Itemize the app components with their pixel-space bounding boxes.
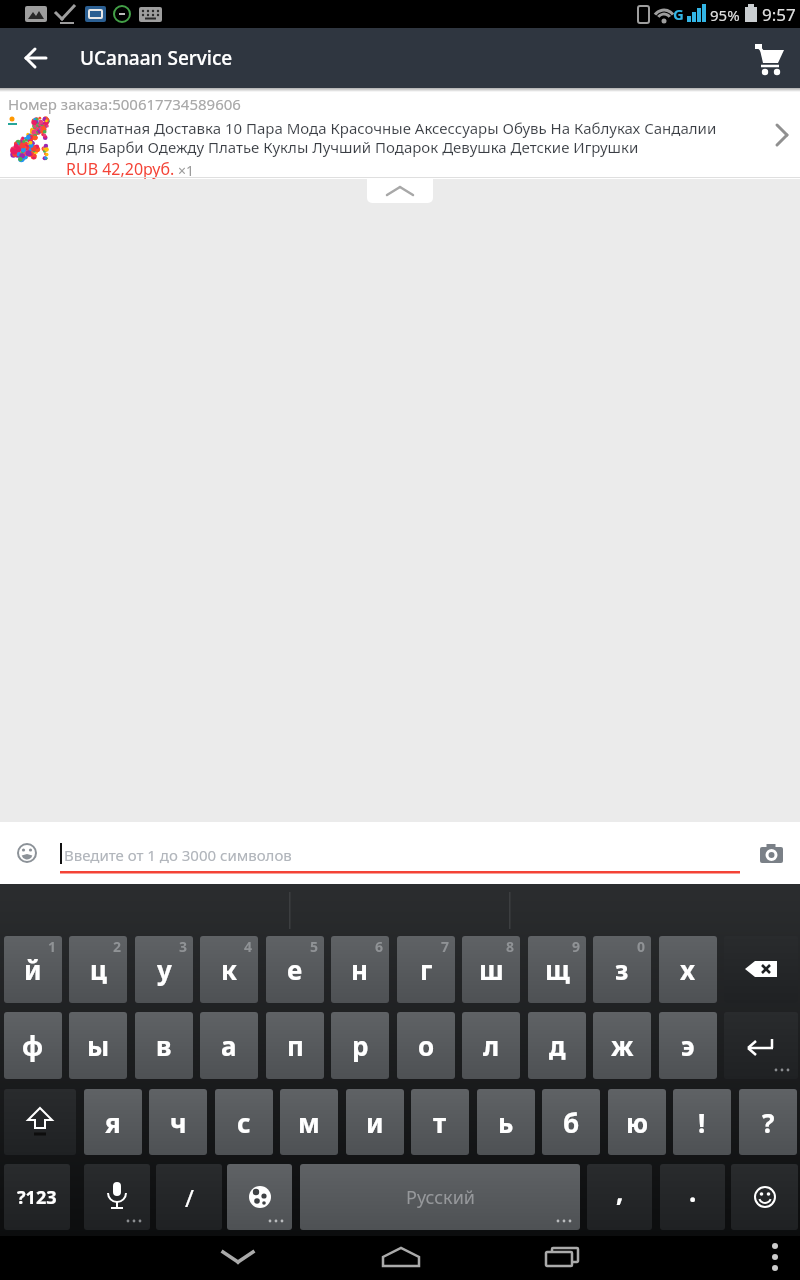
staticText: ц [90, 952, 107, 987]
staticText: л [483, 1028, 500, 1063]
button[interactable]: х [659, 936, 717, 1003]
button[interactable]: ж [593, 1012, 651, 1079]
staticText: 7 [441, 937, 450, 956]
button[interactable]: , [587, 1164, 652, 1230]
staticText: 0 [637, 937, 646, 956]
button[interactable] [12, 34, 60, 82]
button[interactable]: м [280, 1089, 338, 1155]
staticText: ь [498, 1105, 514, 1140]
staticText: 8 [506, 937, 515, 956]
staticText: G [673, 4, 684, 24]
button[interactable] [4, 1089, 76, 1155]
button[interactable]: Русский [300, 1164, 580, 1230]
staticText: т [433, 1105, 447, 1140]
button[interactable]: з [593, 936, 651, 1003]
staticText: я [105, 1105, 121, 1140]
button[interactable]: ш [462, 936, 520, 1003]
staticText: е [287, 952, 303, 987]
button[interactable]: э [659, 1012, 717, 1079]
button[interactable]: р [331, 1012, 389, 1079]
staticText: 9:57 [762, 3, 796, 26]
button[interactable] [724, 936, 798, 1003]
button[interactable]: Бесплатная Доставка 10 Пара Мода Красочн… [0, 112, 800, 177]
staticText: ю [626, 1105, 649, 1140]
staticText: . [689, 1174, 697, 1209]
button[interactable]: и [346, 1089, 404, 1155]
staticText: з [615, 952, 629, 987]
button[interactable]: ь [477, 1089, 535, 1155]
button[interactable]: е [266, 936, 324, 1003]
staticText: э [681, 1028, 695, 1063]
button[interactable] [210, 1236, 266, 1280]
staticText: ! [698, 1105, 706, 1140]
button[interactable]: ч [149, 1089, 207, 1155]
staticText: 4 [244, 937, 253, 956]
staticText: м [298, 1105, 320, 1140]
staticText: 95% [710, 5, 740, 25]
button[interactable] [84, 1164, 150, 1230]
staticText: ы [87, 1028, 110, 1063]
button[interactable]: л [462, 1012, 520, 1079]
staticText: ф [22, 1028, 44, 1063]
button[interactable]: б [542, 1089, 600, 1155]
staticText: / [185, 1181, 194, 1214]
staticText: и [366, 1105, 384, 1140]
staticText: 5 [310, 937, 319, 956]
button[interactable]: ! [673, 1089, 731, 1155]
button[interactable] [755, 1236, 800, 1280]
button[interactable]: т [411, 1089, 469, 1155]
staticText: 6 [375, 937, 384, 956]
button[interactable]: у [135, 936, 193, 1003]
button[interactable]: ? [739, 1089, 797, 1155]
staticText: 3 [179, 937, 188, 956]
button[interactable] [372, 1236, 428, 1280]
button[interactable]: ф [4, 1012, 62, 1079]
button[interactable]: в [135, 1012, 193, 1079]
staticText: х [680, 952, 696, 987]
button[interactable]: о [397, 1012, 455, 1079]
button[interactable]: ю [608, 1089, 666, 1155]
staticText: ч [170, 1105, 187, 1140]
staticText: UCanaan Service [80, 45, 233, 71]
button[interactable] [744, 34, 792, 82]
button[interactable]: . [660, 1164, 725, 1230]
staticText: п [287, 1028, 304, 1063]
staticText: Для Барби Одежду Платье Куклы Лучший Под… [66, 137, 756, 157]
button[interactable]: я [84, 1089, 142, 1155]
staticText: 2 [113, 937, 122, 956]
button[interactable]: ы [69, 1012, 127, 1079]
button[interactable]: ?123 [4, 1164, 70, 1230]
staticText: н [351, 952, 369, 987]
button[interactable]: / [156, 1164, 222, 1230]
button[interactable] [724, 1012, 798, 1079]
button[interactable] [56, 830, 744, 876]
button[interactable]: а [200, 1012, 258, 1079]
staticText: о [418, 1028, 435, 1063]
button[interactable] [534, 1236, 590, 1280]
button[interactable] [731, 1164, 798, 1230]
staticText: р [352, 1028, 369, 1063]
button[interactable]: к [200, 936, 258, 1003]
button[interactable]: д [528, 1012, 586, 1079]
button[interactable] [8, 834, 46, 872]
staticText: г [420, 952, 433, 987]
staticText: Бесплатная Доставка 10 Пара Мода Красочн… [66, 118, 756, 138]
button[interactable]: щ [528, 936, 586, 1003]
button[interactable] [367, 179, 433, 203]
button[interactable]: г [397, 936, 455, 1003]
staticText: ж [611, 1028, 634, 1063]
button[interactable]: н [331, 936, 389, 1003]
button[interactable] [227, 1164, 292, 1230]
button[interactable] [750, 837, 795, 873]
staticText: RUB 42,20руб. [66, 158, 175, 180]
button[interactable]: с [215, 1089, 273, 1155]
staticText: б [563, 1105, 580, 1140]
staticText: 1 [48, 937, 57, 956]
staticText: ? [762, 1105, 775, 1140]
staticText: Введите от 1 до 3000 символов [64, 845, 292, 865]
staticText: ×1 [178, 161, 195, 180]
button[interactable]: п [266, 1012, 324, 1079]
staticText: Русский [406, 1185, 475, 1210]
button[interactable]: ц [69, 936, 127, 1003]
button[interactable]: й [4, 936, 62, 1003]
